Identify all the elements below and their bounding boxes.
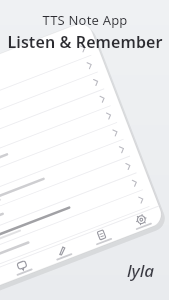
staticText: Listen & Remember [7, 31, 163, 53]
staticText: lyla [127, 259, 155, 282]
button[interactable]: lyla signature [127, 259, 155, 282]
staticText: TTS Note App [42, 11, 128, 29]
